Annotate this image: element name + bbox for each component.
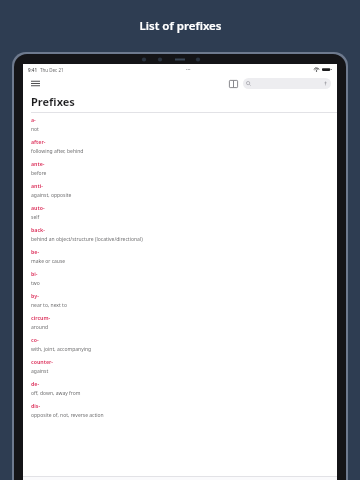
staticText: be-: [31, 248, 40, 255]
staticText: back-: [31, 226, 45, 233]
staticText: anti-: [31, 182, 43, 189]
button[interactable]: Voice search: [243, 78, 331, 89]
staticText: near to, next to: [31, 302, 67, 309]
staticText: make or cause: [31, 258, 66, 265]
staticText: opposite of, not, reverse action: [31, 412, 104, 419]
staticText: circum-: [31, 314, 51, 321]
button[interactable]: dis-: [23, 399, 337, 421]
button[interactable]: de-: [23, 377, 337, 399]
staticText: Prefixes: [31, 94, 75, 109]
button[interactable]: circum-: [23, 311, 337, 333]
staticText: bi-: [31, 270, 38, 277]
staticText: two: [31, 280, 40, 287]
staticText: ante-: [31, 160, 45, 167]
button[interactable]: a-: [23, 113, 337, 135]
button[interactable]: Menu: [29, 77, 42, 90]
staticText: de-: [31, 380, 40, 387]
staticText: co-: [31, 336, 39, 343]
other: Voice search: [323, 81, 328, 86]
staticText: against: [31, 368, 49, 375]
staticText: before: [31, 170, 47, 177]
button[interactable]: back-: [23, 223, 337, 245]
staticText: Thu Dec 21: [40, 67, 64, 73]
staticText: counter-: [31, 358, 53, 365]
staticText: following after, behind: [31, 148, 84, 155]
button[interactable]: counter-: [23, 355, 337, 377]
staticText: behind an object/structure (locative/dir…: [31, 236, 143, 243]
button[interactable]: co-: [23, 333, 337, 355]
staticText: by-: [31, 292, 39, 299]
button[interactable]: Library: [227, 77, 240, 90]
button[interactable]: ante-: [23, 157, 337, 179]
staticText: List of prefixes: [139, 18, 222, 34]
button[interactable]: auto-: [23, 201, 337, 223]
staticText: against, opposite: [31, 192, 72, 199]
button[interactable]: be-: [23, 245, 337, 267]
staticText: dis-: [31, 402, 41, 409]
staticText: self: [31, 214, 40, 221]
staticText: a-: [31, 116, 36, 123]
staticText: 9:41: [28, 67, 37, 73]
button[interactable]: after-: [23, 135, 337, 157]
staticText: auto-: [31, 204, 45, 211]
staticText: off, down, away from: [31, 390, 81, 397]
button[interactable]: by-: [23, 289, 337, 311]
staticText: not: [31, 126, 39, 133]
button[interactable]: bi-: [23, 267, 337, 289]
staticText: with, joint, accompanying: [31, 346, 92, 353]
staticText: •••: [186, 67, 191, 72]
button[interactable]: anti-: [23, 179, 337, 201]
staticText: after-: [31, 138, 46, 145]
staticText: around: [31, 324, 49, 331]
